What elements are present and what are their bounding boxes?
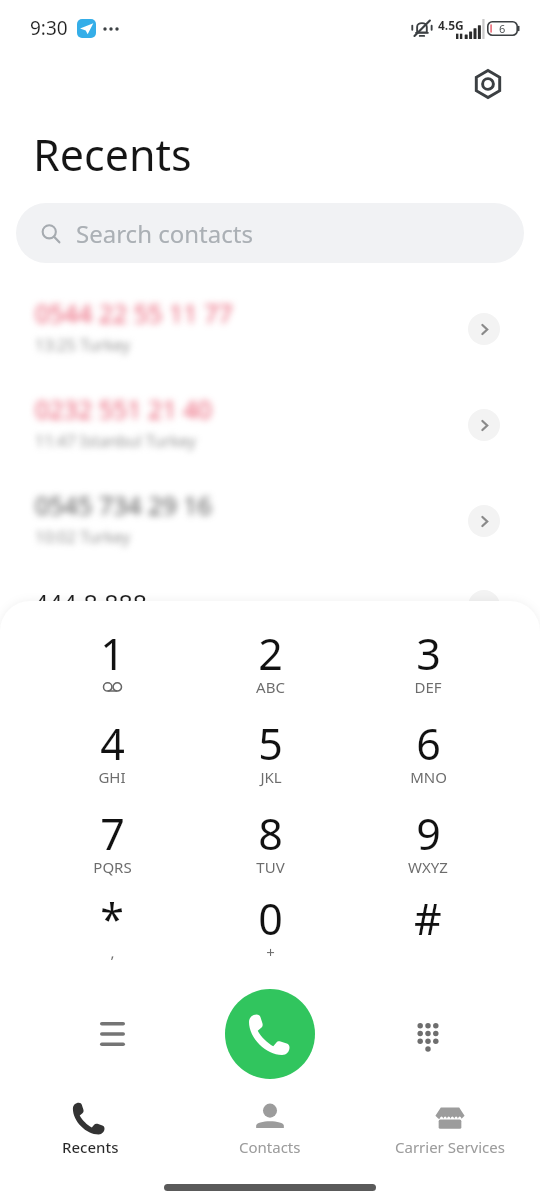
staticText: JKL bbox=[260, 767, 282, 787]
staticText: Carrier Services bbox=[395, 1137, 505, 1157]
button[interactable]: Call bbox=[225, 989, 315, 1079]
button[interactable]: * bbox=[33, 889, 191, 977]
button[interactable]: Settings bbox=[468, 64, 508, 104]
staticText: TUV bbox=[256, 857, 285, 877]
staticText: 6 bbox=[499, 21, 506, 36]
button[interactable]: Carrier Services bbox=[360, 1096, 540, 1162]
button[interactable]: 9 bbox=[349, 804, 507, 892]
button[interactable]: 1 bbox=[33, 624, 191, 712]
button[interactable]: Call details bbox=[468, 505, 500, 537]
staticText: Contacts bbox=[239, 1137, 301, 1157]
staticText: 0 bbox=[258, 889, 283, 948]
staticText: + bbox=[266, 942, 275, 962]
staticText: 8 bbox=[258, 804, 283, 863]
staticText: Search contacts bbox=[76, 217, 253, 250]
staticText: WXYZ bbox=[408, 857, 448, 877]
staticText: 4 bbox=[100, 714, 125, 773]
button[interactable]: 0 bbox=[191, 889, 349, 977]
staticText: # bbox=[414, 889, 442, 948]
staticText: 4.5G bbox=[438, 17, 464, 33]
button[interactable]: # bbox=[349, 889, 507, 977]
staticText: 11:47 Istanbul Turkey bbox=[35, 430, 196, 452]
button[interactable]: Menu bbox=[86, 1008, 138, 1060]
button[interactable]: Recents bbox=[0, 1096, 180, 1162]
button[interactable]: Contacts bbox=[180, 1096, 360, 1162]
button[interactable]: 5 bbox=[191, 714, 349, 802]
staticText: PQRS bbox=[93, 857, 132, 877]
staticText: MNO bbox=[410, 767, 447, 787]
staticText: 5 bbox=[258, 714, 283, 773]
button[interactable]: 8 bbox=[191, 804, 349, 892]
button[interactable]: 6 bbox=[349, 714, 507, 802]
button[interactable]: Dialpad bbox=[402, 1008, 454, 1060]
staticText: 9:30 bbox=[30, 15, 68, 41]
button[interactable]: 2 bbox=[191, 624, 349, 712]
staticText: 444 8 888 bbox=[34, 586, 148, 620]
button[interactable]: 3 bbox=[349, 624, 507, 712]
staticText: ABC bbox=[256, 677, 285, 697]
staticText: GHI bbox=[98, 767, 126, 787]
staticText: , bbox=[110, 942, 115, 962]
staticText: 6 bbox=[416, 714, 441, 773]
staticText: Recents bbox=[33, 125, 192, 184]
staticText: 0544 22 55 11 77 bbox=[35, 296, 233, 330]
staticText: Recents bbox=[62, 1137, 119, 1157]
button[interactable]: Search contacts bbox=[16, 203, 524, 263]
button[interactable]: Call details bbox=[468, 409, 500, 441]
button[interactable]: 4 bbox=[33, 714, 191, 802]
staticText: 9 bbox=[416, 804, 441, 863]
staticText: 10:02 Turkey bbox=[35, 526, 131, 548]
staticText: 1 bbox=[100, 624, 125, 683]
staticText: 2 bbox=[258, 624, 283, 683]
button[interactable]: 7 bbox=[33, 804, 191, 892]
staticText: 0545 734 29 16 bbox=[35, 488, 212, 522]
staticText: DEF bbox=[414, 677, 442, 697]
staticText: 0232 551 21 40 bbox=[35, 392, 212, 426]
staticText: 13:25 Turkey bbox=[35, 334, 131, 356]
staticText: * bbox=[100, 889, 124, 948]
button[interactable]: 0232 551 21 40 bbox=[0, 374, 540, 470]
staticText: 3 bbox=[416, 624, 441, 683]
button[interactable]: 0544 22 55 11 77 bbox=[0, 278, 540, 374]
staticText: 7 bbox=[100, 804, 125, 863]
button[interactable]: Call details bbox=[468, 313, 500, 345]
button[interactable]: 0545 734 29 16 bbox=[0, 470, 540, 566]
